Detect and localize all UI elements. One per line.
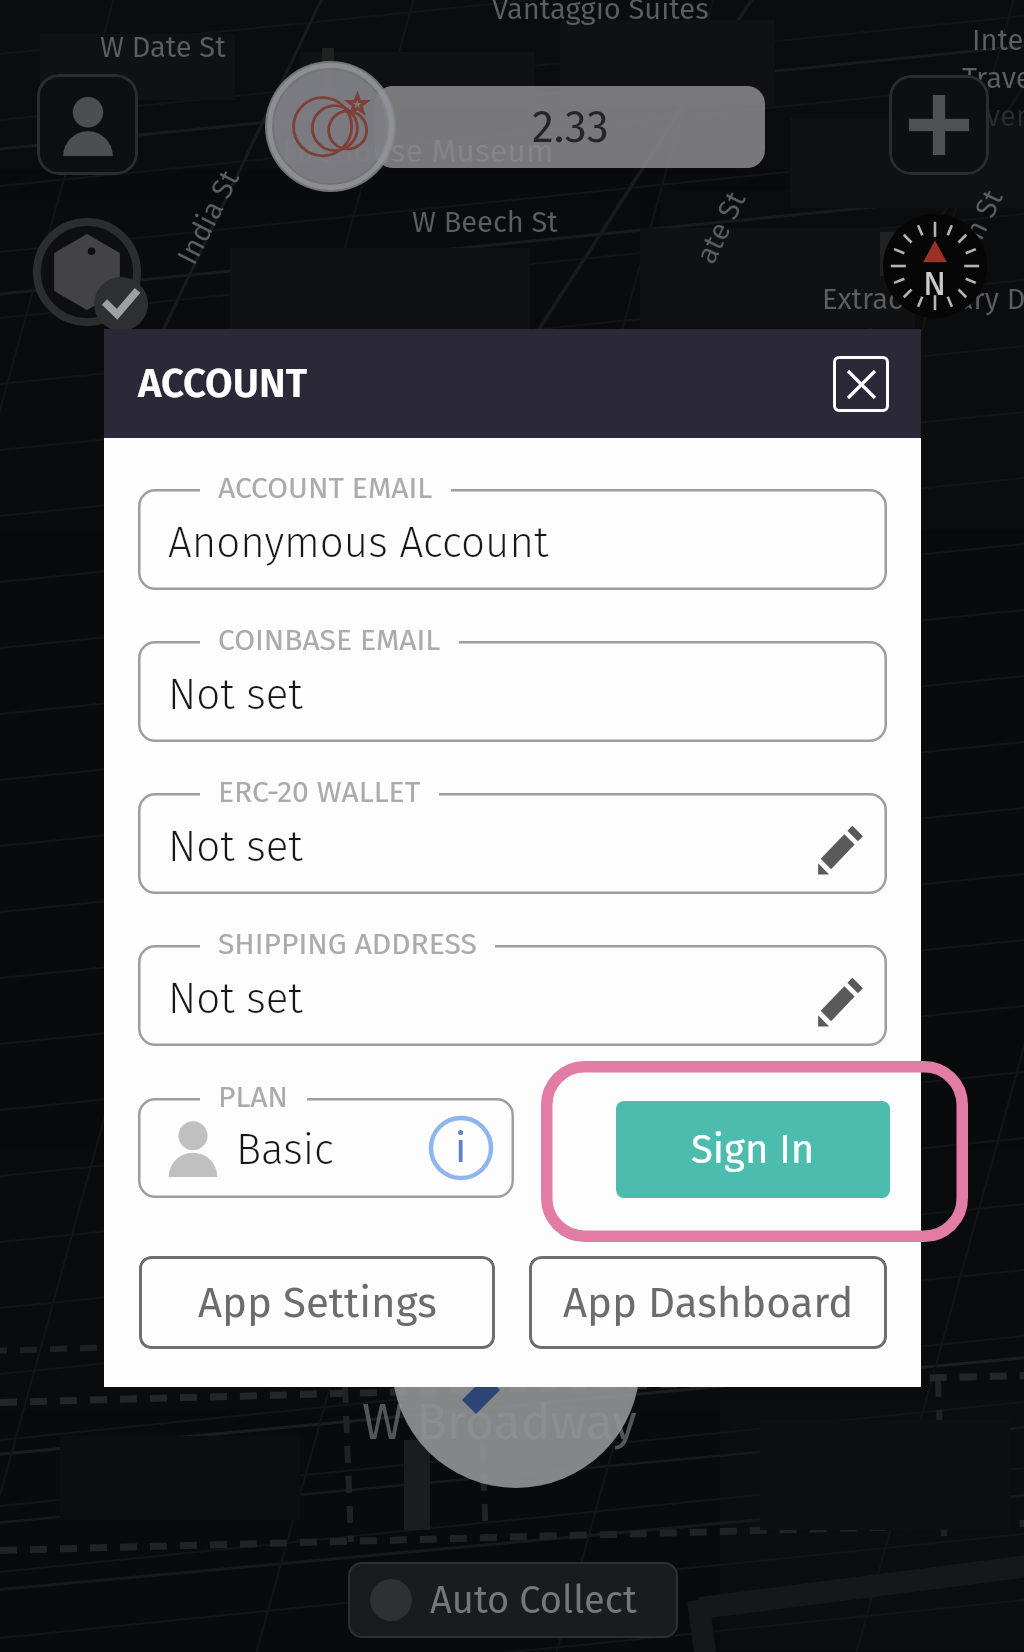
- staticText: i: [455, 1125, 467, 1173]
- staticText: Inter: [972, 23, 1024, 58]
- button[interactable]: ACCOUNT EMAIL: [138, 489, 887, 590]
- staticText: ate St: [689, 186, 753, 269]
- button[interactable]: Edit ERC-20 WALLET: [813, 824, 865, 876]
- staticText: Sign In: [691, 1126, 815, 1174]
- button[interactable]: 2.33: [375, 86, 765, 168]
- staticText: W Date St: [100, 30, 226, 65]
- button[interactable]: App Dashboard: [529, 1256, 887, 1349]
- staticText: Not set: [168, 670, 303, 720]
- staticText: Basic: [236, 1125, 334, 1175]
- staticText: ERC-20 WALLET: [218, 774, 421, 810]
- staticText: Not set: [168, 822, 303, 872]
- staticText: ACCOUNT EMAIL: [218, 470, 433, 506]
- button[interactable]: Sign In: [616, 1101, 890, 1198]
- button[interactable]: Auto Collect: [348, 1562, 678, 1638]
- staticText: PLAN: [218, 1079, 289, 1115]
- staticText: Advent: [952, 99, 1024, 134]
- staticText: App Dashboard: [563, 1278, 854, 1328]
- staticText: Vantaggio Suites: [492, 0, 709, 27]
- button[interactable]: SHIPPING ADDRESS: [138, 945, 887, 1046]
- button[interactable]: Plan info: [428, 1115, 494, 1181]
- button[interactable]: App Settings: [139, 1256, 495, 1349]
- button[interactable]: Edit SHIPPING ADDRESS: [813, 976, 865, 1028]
- button[interactable]: PLAN: [138, 1098, 514, 1198]
- staticText: N: [923, 263, 947, 304]
- staticText: Not set: [168, 974, 303, 1024]
- button[interactable]: ERC-20 WALLET: [138, 793, 887, 894]
- staticText: COINBASE EMAIL: [218, 622, 441, 658]
- staticText: Extraordinary Des: [822, 282, 1024, 317]
- button[interactable]: COINBASE EMAIL: [138, 641, 887, 742]
- button[interactable]: Close: [833, 356, 889, 412]
- staticText: SHIPPING ADDRESS: [218, 926, 477, 962]
- staticText: W Beech St: [412, 205, 558, 240]
- staticText: Firehouse Museum: [282, 132, 554, 170]
- staticText: 2.33: [532, 101, 609, 154]
- staticText: Travel: [962, 61, 1024, 96]
- staticText: on St: [949, 184, 1011, 261]
- button[interactable]: Add: [889, 75, 989, 175]
- staticText: Anonymous Account: [168, 518, 549, 568]
- staticText: W Broadway: [362, 1392, 637, 1452]
- staticText: India St: [170, 165, 247, 270]
- button[interactable]: Profile: [37, 74, 138, 175]
- staticText: ACCOUNT: [138, 360, 307, 408]
- staticText: App Settings: [198, 1278, 437, 1328]
- staticText: Auto Collect: [430, 1577, 637, 1623]
